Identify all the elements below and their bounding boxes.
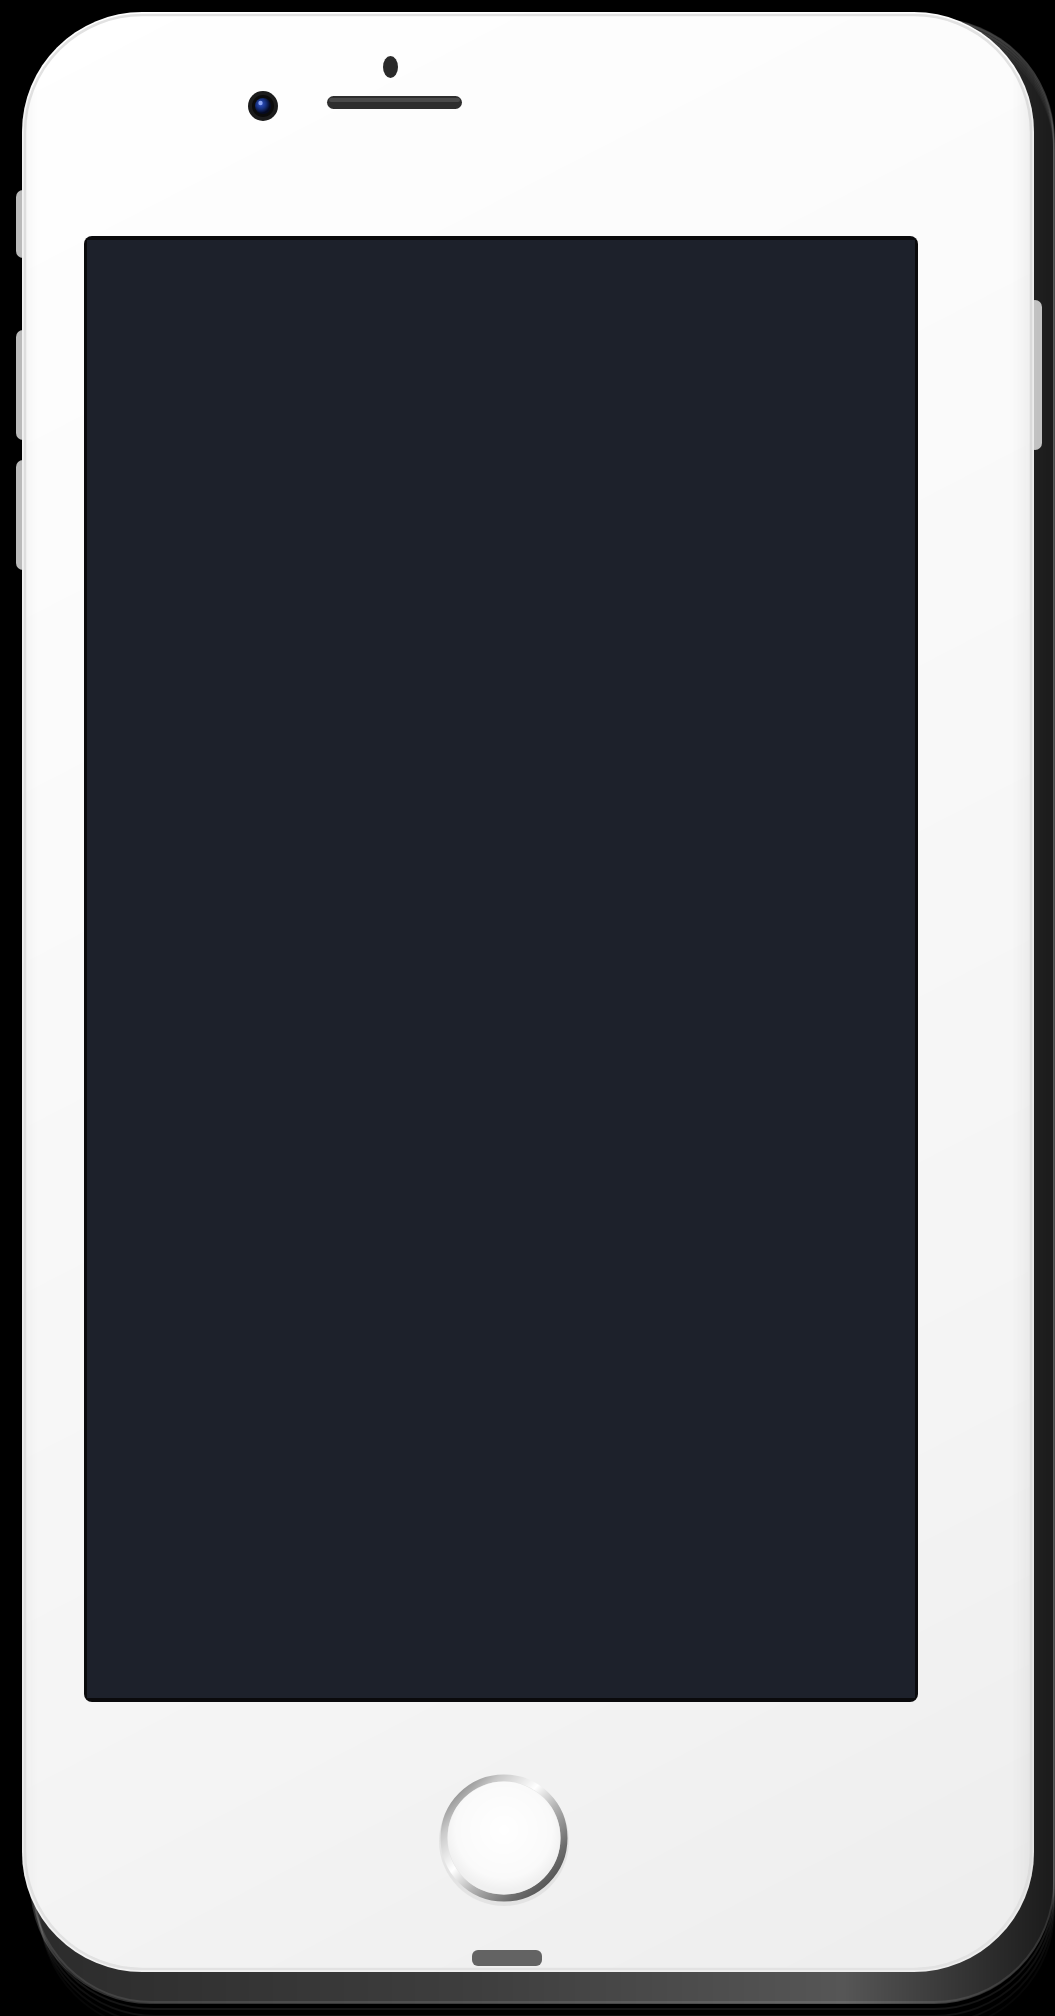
button[interactable]: White smartphone device mockup: [0, 0, 1055, 2016]
